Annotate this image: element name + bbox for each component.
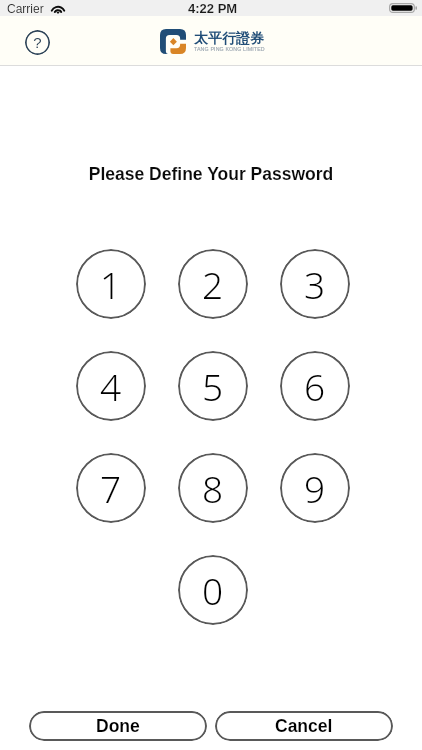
staticText: 1 bbox=[100, 259, 122, 309]
button[interactable]: 7 bbox=[76, 453, 146, 523]
button[interactable]: 8 bbox=[178, 453, 248, 523]
staticText: 3 bbox=[304, 259, 326, 309]
staticText: 0 bbox=[202, 565, 224, 615]
staticText: 2 bbox=[202, 259, 224, 309]
button[interactable]: 3 bbox=[280, 249, 350, 319]
staticText: 9 bbox=[304, 463, 326, 513]
staticText: ? bbox=[33, 34, 42, 51]
staticText: 8 bbox=[202, 463, 224, 513]
button[interactable]: 1 bbox=[76, 249, 146, 319]
staticText: Carrier bbox=[7, 2, 44, 15]
staticText: Done bbox=[96, 716, 140, 736]
button[interactable]: 6 bbox=[280, 351, 350, 421]
button[interactable]: Done bbox=[29, 711, 207, 741]
button[interactable]: 4 bbox=[76, 351, 146, 421]
staticText: Please Define Your Password bbox=[0, 164, 422, 184]
button[interactable]: Cancel bbox=[215, 711, 393, 741]
button[interactable]: 2 bbox=[178, 249, 248, 319]
button[interactable]: 0 bbox=[178, 555, 248, 625]
staticText: 4 bbox=[100, 361, 122, 411]
button[interactable]: 9 bbox=[280, 453, 350, 523]
staticText: Cancel bbox=[275, 716, 333, 736]
staticText: 5 bbox=[202, 361, 224, 411]
staticText: 太平行證券 bbox=[194, 30, 264, 48]
staticText: 4:22 PM bbox=[188, 1, 238, 16]
staticText: 6 bbox=[304, 361, 326, 411]
button[interactable]: 5 bbox=[178, 351, 248, 421]
staticText: 7 bbox=[100, 463, 122, 513]
staticText: TANG PING KONG LIMITED bbox=[194, 46, 265, 52]
button[interactable]: Help bbox=[25, 30, 50, 55]
